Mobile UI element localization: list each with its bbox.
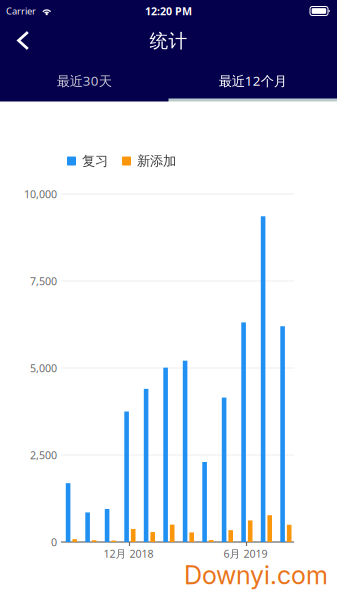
button[interactable]: 最近12个月 xyxy=(168,58,337,101)
staticText: 5,000 xyxy=(30,361,57,375)
staticText: 2,500 xyxy=(30,448,57,462)
staticText: 10,000 xyxy=(24,187,57,201)
staticText: 新添加 xyxy=(137,153,176,169)
staticText: 最近12个月 xyxy=(219,72,287,89)
staticText: 统计 xyxy=(149,29,187,52)
staticText: 7,500 xyxy=(30,274,57,288)
staticText: Downyi.com xyxy=(184,560,328,590)
button[interactable]: 最近30天 xyxy=(0,58,168,101)
staticText: Carrier xyxy=(6,5,36,17)
staticText: 复习 xyxy=(82,153,108,169)
staticText: 6月 2019 xyxy=(223,546,267,561)
button[interactable]: Back xyxy=(0,18,44,59)
staticText: 12:20 PM xyxy=(145,4,192,18)
staticText: 12月 2018 xyxy=(103,546,153,561)
staticText: 0 xyxy=(51,535,57,549)
staticText: 最近30天 xyxy=(57,72,112,89)
